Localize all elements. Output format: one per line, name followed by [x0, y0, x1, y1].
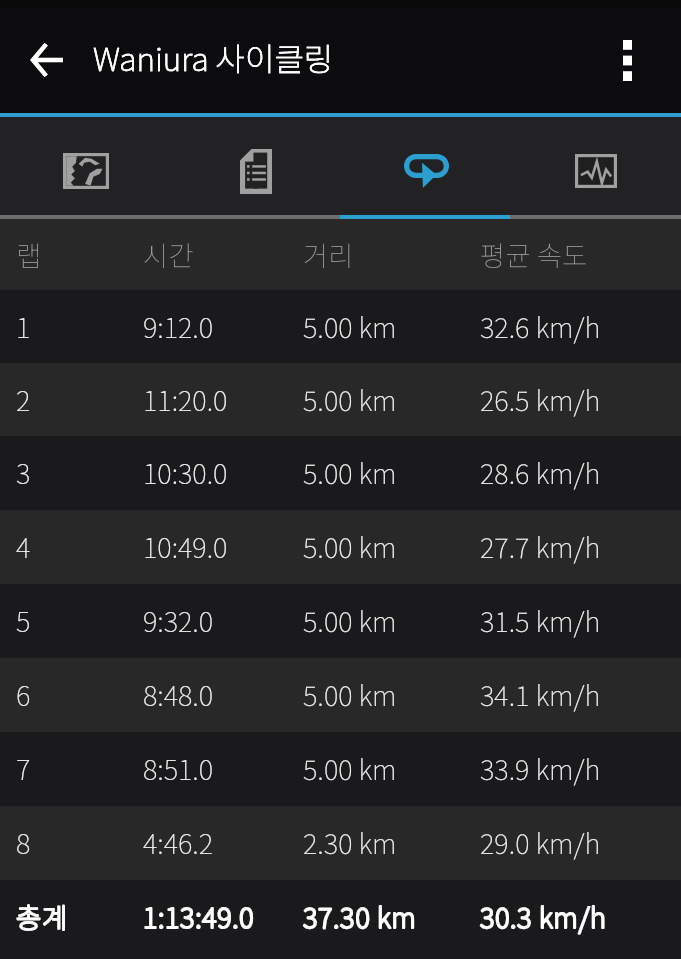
staticText: 1:13:49.0 [143, 896, 255, 936]
staticText: 3 [16, 452, 31, 492]
staticText: 총계 [16, 896, 68, 936]
staticText: 32.6 km/h [480, 306, 601, 346]
staticText: 31.5 km/h [480, 600, 601, 640]
staticText: 4 [16, 526, 31, 566]
staticText: 5 [16, 600, 31, 640]
staticText: 5.00 km [303, 452, 397, 492]
staticText: 2.30 km [303, 822, 397, 862]
staticText: 27.7 km/h [480, 526, 601, 566]
staticText: 5.00 km [303, 306, 397, 346]
staticText: 평균 속도 [480, 234, 588, 274]
staticText: 30.3 km/h [480, 896, 607, 936]
staticText: 11:20.0 [143, 379, 228, 419]
button[interactable]: More options [574, 7, 681, 113]
staticText: 8:51.0 [143, 748, 214, 788]
staticText: 5.00 km [303, 379, 397, 419]
staticText: 9:32.0 [143, 600, 214, 640]
button[interactable]: Back [0, 7, 93, 113]
button[interactable]: 4 [0, 510, 681, 584]
staticText: 30.3 km/h [480, 896, 607, 936]
staticText: 29.0 km/h [480, 822, 601, 862]
button[interactable]: 2 [0, 363, 681, 436]
staticText: 5.00 km [303, 526, 397, 566]
staticText: 5.00 km [303, 748, 397, 788]
staticText: 34.1 km/h [480, 674, 601, 714]
button[interactable]: 7 [0, 732, 681, 806]
staticText: 시간 [143, 234, 194, 274]
button[interactable]: 5 [0, 584, 681, 658]
button[interactable]: Details [171, 127, 341, 215]
button[interactable]: 1 [0, 290, 681, 363]
staticText: 9:12.0 [143, 306, 214, 346]
staticText: 7 [16, 748, 31, 788]
staticText: 1 [16, 306, 31, 346]
staticText: 37.30 km [303, 896, 417, 936]
staticText: 1:13:49.0 [143, 896, 255, 936]
button[interactable]: Chart [511, 127, 681, 215]
button[interactable]: 8 [0, 806, 681, 880]
button[interactable]: Laps [341, 127, 511, 215]
staticText: Waniura 사이클링 [93, 34, 334, 80]
staticText: 2 [16, 379, 31, 419]
staticText: 37.30 km [303, 896, 417, 936]
staticText: 랩 [16, 234, 42, 274]
button[interactable]: Map [0, 127, 171, 215]
staticText: 거리 [303, 234, 354, 274]
staticText: 8 [16, 822, 31, 862]
staticText: 10:30.0 [143, 452, 228, 492]
staticText: 26.5 km/h [480, 379, 601, 419]
staticText: 4:46.2 [143, 822, 214, 862]
button[interactable]: 6 [0, 658, 681, 732]
staticText: Waniura 사이클링 [93, 34, 334, 80]
staticText: 5.00 km [303, 674, 397, 714]
staticText: 5.00 km [303, 600, 397, 640]
staticText: 6 [16, 674, 31, 714]
staticText: 10:49.0 [143, 526, 228, 566]
staticText: 8:48.0 [143, 674, 214, 714]
button[interactable]: 3 [0, 436, 681, 510]
staticText: 28.6 km/h [480, 452, 601, 492]
staticText: 총계 [16, 896, 68, 936]
staticText: 33.9 km/h [480, 748, 601, 788]
